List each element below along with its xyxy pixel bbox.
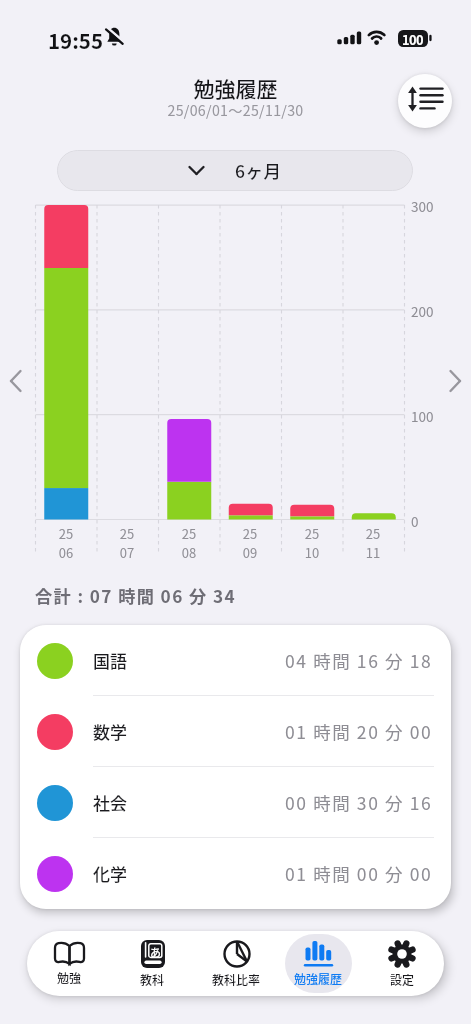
staticText: 数学 xyxy=(93,719,127,744)
staticText: 19:55 xyxy=(48,25,104,55)
staticText: 教科比率 xyxy=(212,971,261,988)
staticText: 100 xyxy=(402,30,424,47)
staticText: 00 時間 30 分 16 xyxy=(285,790,433,815)
button[interactable]: 6ヶ月 xyxy=(57,150,413,191)
staticText: 100 xyxy=(411,406,434,426)
staticText: 勉強履歴 xyxy=(0,73,471,103)
staticText: 25 06 xyxy=(26,524,106,562)
button[interactable]: 社会 xyxy=(20,767,451,838)
staticText: 25 08 xyxy=(149,524,229,562)
staticText: 勉強 xyxy=(57,969,82,986)
button[interactable]: 勉強 xyxy=(28,931,111,996)
button[interactable]: 数学 xyxy=(20,696,451,767)
staticText: 25/06/01～25/11/30 xyxy=(0,100,471,121)
staticText: 勉強履歴 xyxy=(294,970,343,987)
staticText: 04 時間 16 分 18 xyxy=(285,648,433,673)
staticText: 合計 : 07 時間 06 分 34 xyxy=(35,583,236,608)
staticText: 25 10 xyxy=(272,524,352,562)
staticText: 25 11 xyxy=(333,524,413,562)
button[interactable]: 勉強履歴 xyxy=(277,931,360,996)
button[interactable]: 教科比率 xyxy=(195,931,278,996)
staticText: 01 時間 00 分 00 xyxy=(285,861,433,886)
button[interactable]: 国語 xyxy=(20,625,451,696)
staticText: あ xyxy=(150,944,161,960)
button[interactable] xyxy=(398,74,452,128)
staticText: 国語 xyxy=(93,648,127,673)
staticText: 25 07 xyxy=(87,524,167,562)
staticText: 6ヶ月 xyxy=(235,158,282,183)
staticText: 300 xyxy=(411,196,434,216)
staticText: 0 xyxy=(411,511,419,531)
button[interactable] xyxy=(0,350,32,412)
button[interactable]: 化学 xyxy=(20,838,451,909)
staticText: 社会 xyxy=(93,790,127,815)
button[interactable] xyxy=(439,350,471,412)
button[interactable]: 設定 xyxy=(360,931,443,996)
staticText: 化学 xyxy=(93,861,127,886)
staticText: 設定 xyxy=(390,971,415,988)
staticText: 教科 xyxy=(140,971,165,988)
staticText: 200 xyxy=(411,301,434,321)
staticText: 01 時間 20 分 00 xyxy=(285,719,433,744)
button[interactable]: あ xyxy=(111,931,194,996)
staticText: 25 09 xyxy=(210,524,290,562)
